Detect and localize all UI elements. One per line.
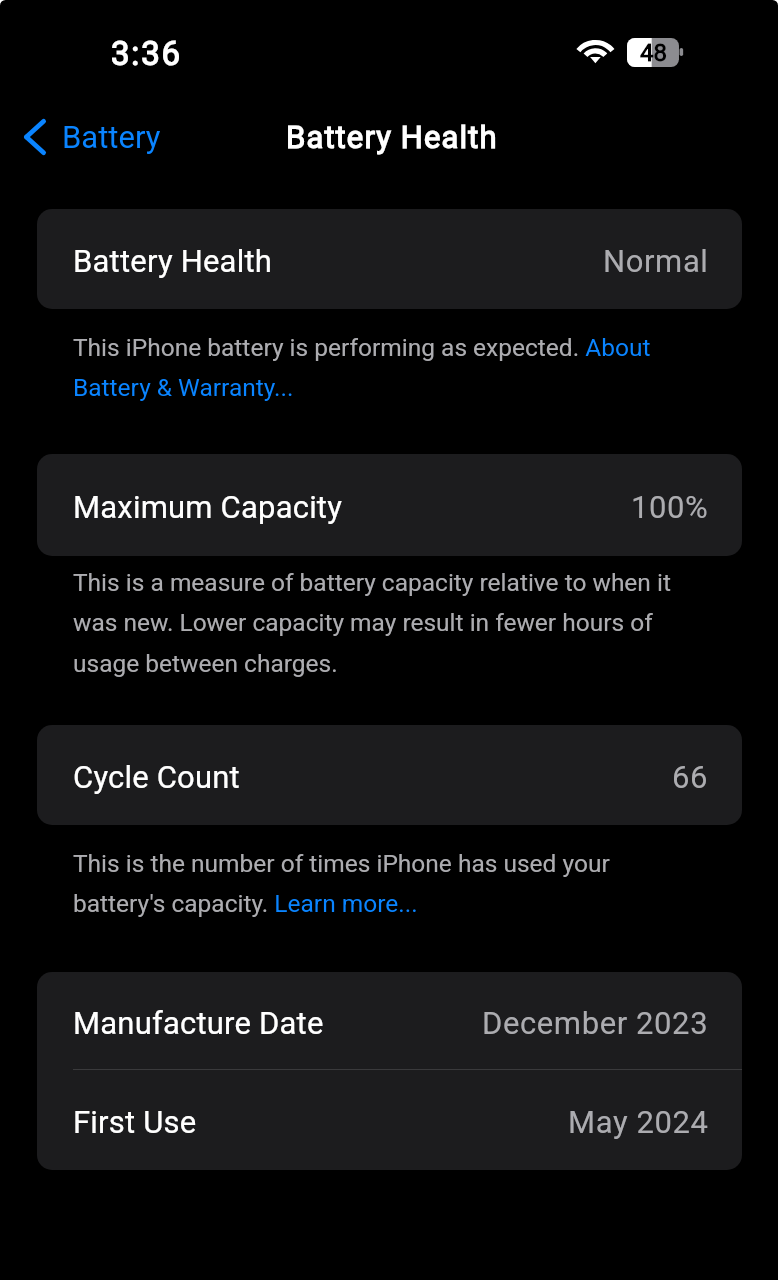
button[interactable]: Manufacture Date: [37, 972, 742, 1069]
staticText: 48: [640, 39, 667, 67]
staticText: Battery Health: [286, 119, 498, 155]
button[interactable]: About Battery & Warranty: [73, 373, 294, 403]
staticText: First Use: [73, 1104, 197, 1140]
other: Wi-Fi: [576, 38, 615, 66]
button[interactable]: Back to Battery: [16, 113, 173, 161]
staticText: Cycle Count: [73, 759, 240, 795]
button[interactable]: Learn more: [274, 889, 420, 919]
staticText: 3:36: [111, 34, 182, 73]
staticText: Battery: [62, 119, 161, 155]
staticText: 100%: [631, 489, 709, 525]
other: Back to Battery: [24, 119, 46, 155]
button[interactable]: About Battery & Warranty: [588, 332, 706, 362]
staticText: Normal: [603, 243, 709, 279]
staticText: December 2023: [482, 1005, 709, 1041]
staticText: This is the number of times iPhone has u…: [73, 849, 610, 918]
other: Battery 48 percent: [627, 38, 684, 67]
button[interactable]: Battery Health: [37, 209, 742, 309]
staticText: This iPhone battery is performing as exp…: [73, 333, 651, 402]
staticText: This is a measure of battery capacity re…: [73, 568, 671, 678]
button[interactable]: Maximum Capacity: [37, 454, 742, 556]
staticText: 66: [672, 759, 709, 795]
staticText: Maximum Capacity: [73, 489, 343, 525]
button[interactable]: First Use: [37, 1070, 742, 1170]
staticText: Manufacture Date: [73, 1005, 324, 1041]
staticText: May 2024: [568, 1104, 709, 1140]
button[interactable]: Cycle Count: [37, 725, 742, 825]
staticText: Battery Health: [73, 243, 273, 279]
